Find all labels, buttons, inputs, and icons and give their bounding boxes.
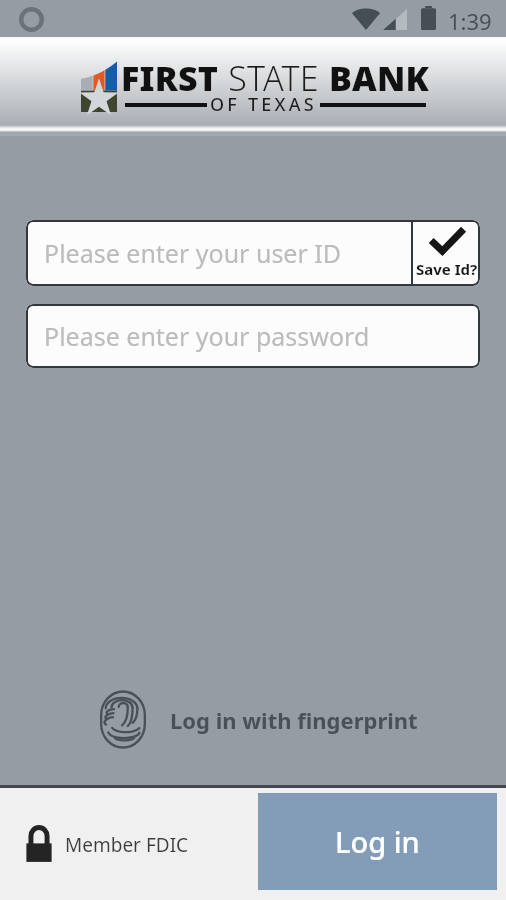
button[interactable]: Log in with fingerprint xyxy=(99,690,418,749)
button[interactable]: Save Id? xyxy=(413,220,480,286)
staticText: Log in with fingerprint xyxy=(170,705,418,735)
other: Status indicator xyxy=(19,7,44,32)
button[interactable]: Please enter your user ID xyxy=(26,220,411,286)
staticText: Please enter your password xyxy=(44,319,370,353)
staticText: FIRST xyxy=(121,55,219,101)
button[interactable]: Log in xyxy=(258,793,497,890)
staticText: BANK xyxy=(329,55,430,101)
staticText: OF TEXAS xyxy=(210,92,317,117)
staticText: STATE xyxy=(219,55,329,101)
button[interactable]: Please enter your password xyxy=(26,304,480,368)
staticText: Log in xyxy=(335,822,420,861)
staticText: Save Id? xyxy=(416,259,478,279)
staticText: 1:39 xyxy=(448,6,492,36)
staticText: Please enter your user ID xyxy=(44,236,342,270)
button[interactable]: Member FDIC xyxy=(26,826,189,863)
staticText: Member FDIC xyxy=(65,832,189,858)
